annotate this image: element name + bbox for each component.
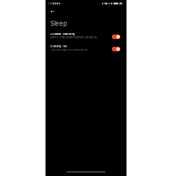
staticText: Sleep: [50, 20, 67, 27]
staticText: Track your night-time breathing rate: [50, 48, 87, 51]
button[interactable]: Toggle: [112, 34, 120, 39]
button[interactable]: Advanced monitoring: [45, 30, 126, 42]
staticText: Breathing rate: [50, 45, 67, 48]
button[interactable]: Back: [48, 7, 58, 16]
staticText: Advanced monitoring: [50, 33, 75, 36]
staticText: 4:52: [48, 2, 52, 5]
button[interactable]: Toggle: [112, 47, 120, 51]
staticText: Monitor sleep-related movements and snor…: [50, 36, 96, 39]
button[interactable]: Breathing rate: [45, 42, 126, 54]
